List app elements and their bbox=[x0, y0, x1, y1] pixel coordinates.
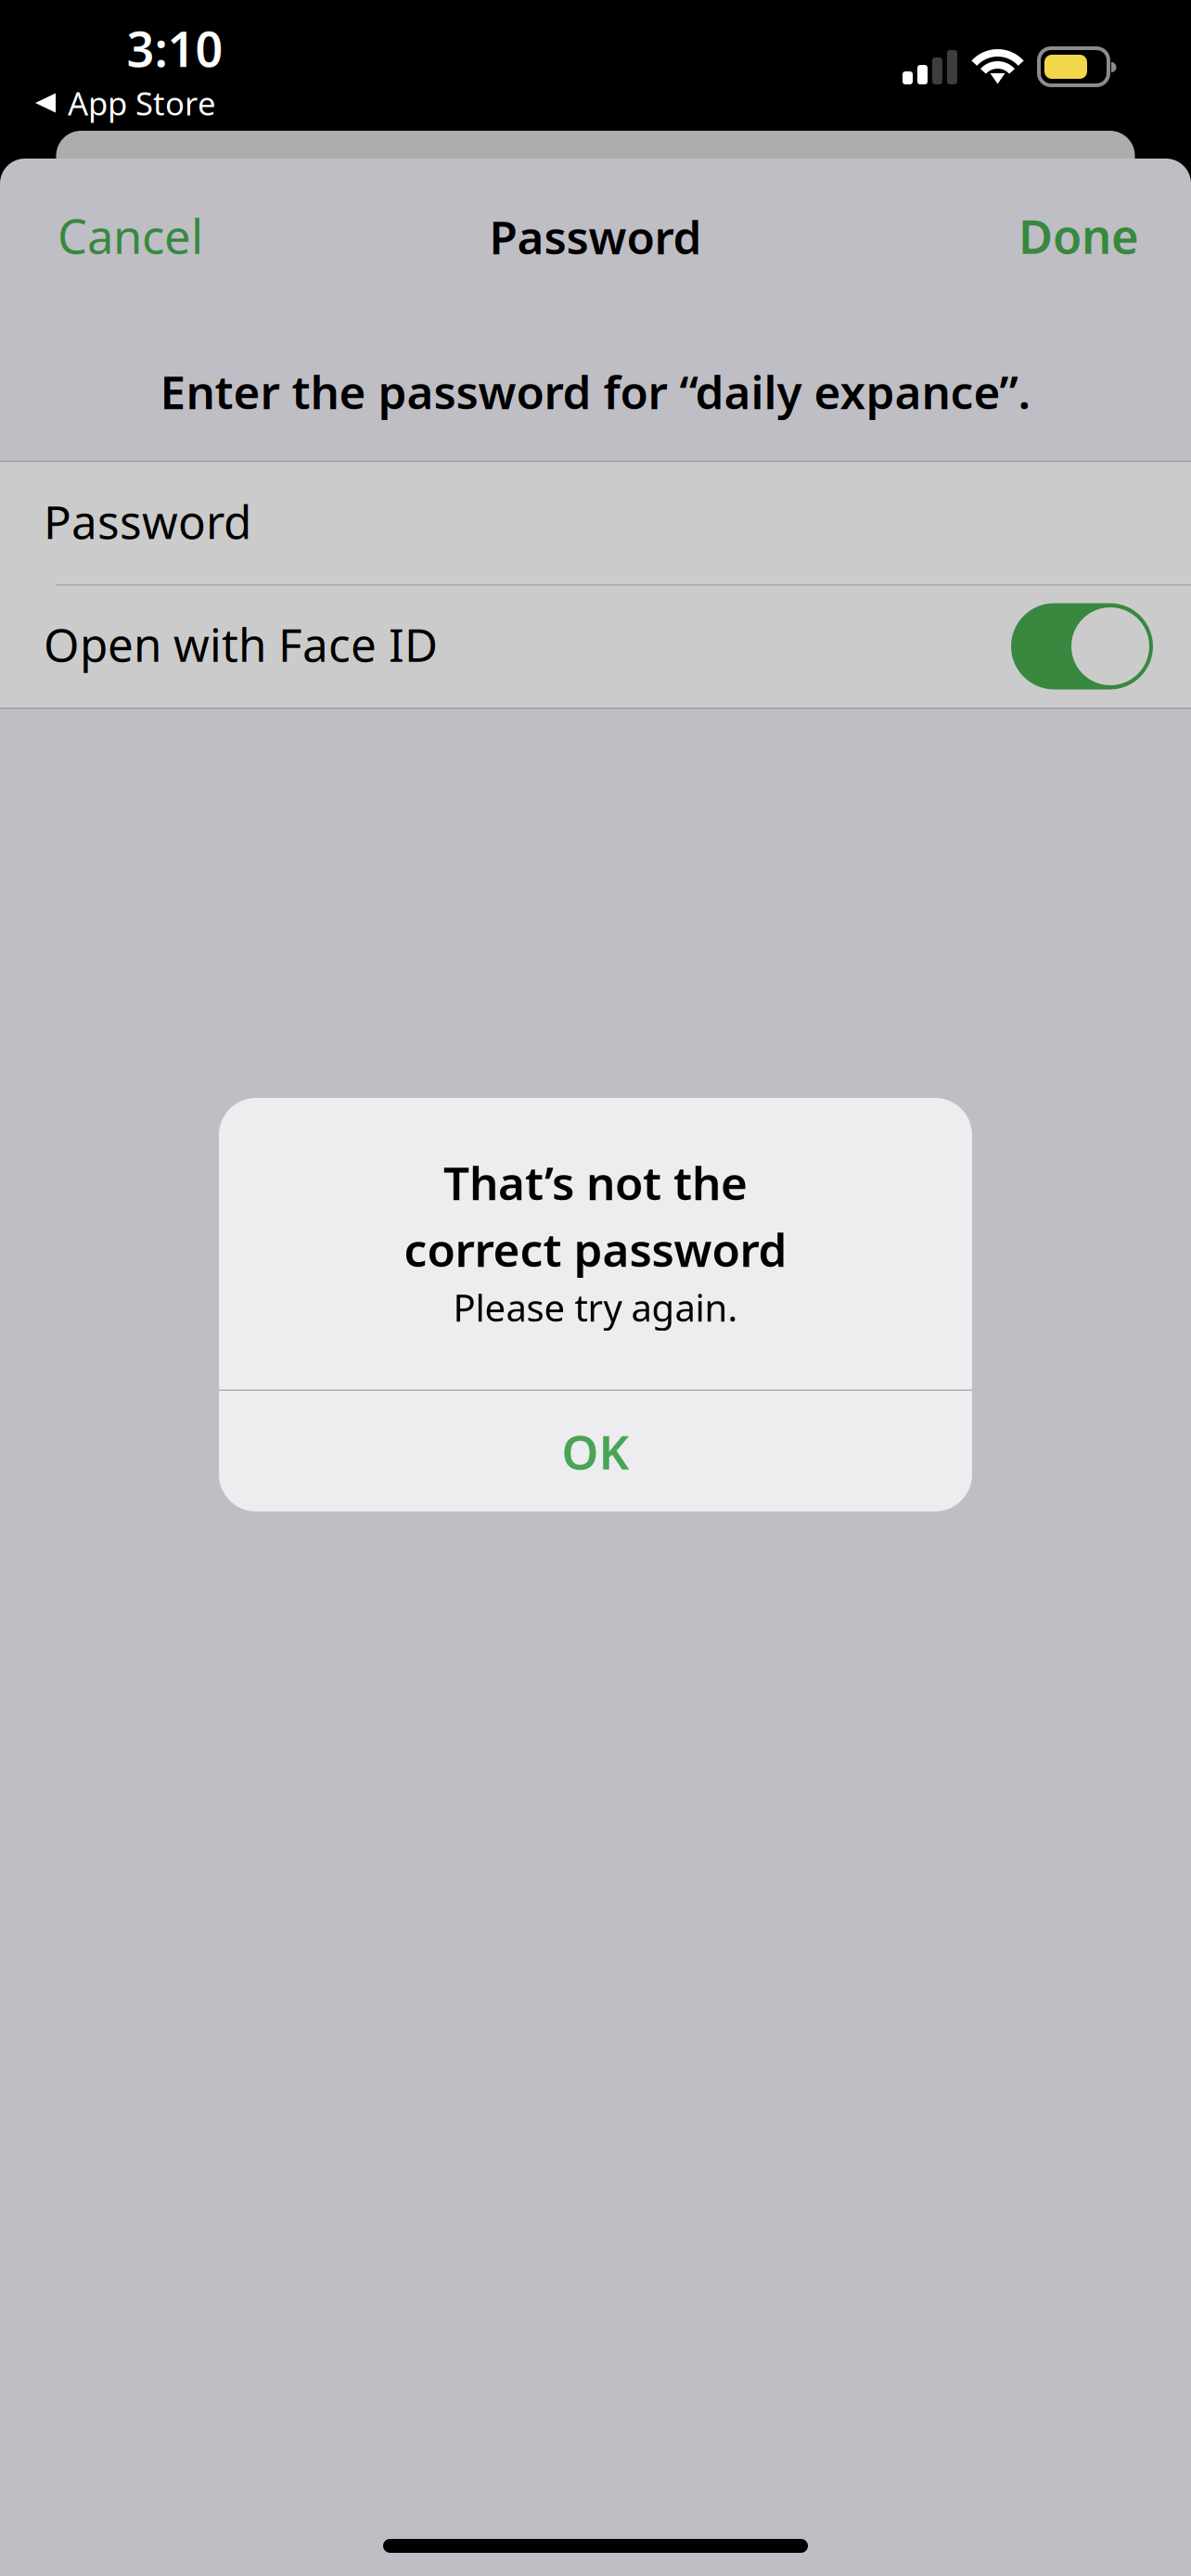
staticText: Open with Face ID bbox=[44, 613, 438, 675]
button[interactable]: Password bbox=[0, 460, 1191, 582]
staticText: OK bbox=[562, 1419, 629, 1483]
staticText: 3:10 bbox=[127, 15, 223, 81]
staticText: That’s not the bbox=[443, 1151, 748, 1214]
staticText: Please try again. bbox=[453, 1282, 738, 1332]
staticText: Password bbox=[44, 490, 251, 552]
staticText: Cancel bbox=[58, 204, 203, 268]
button[interactable]: On bbox=[0, 583, 1191, 705]
staticText: Done bbox=[1018, 204, 1139, 268]
button[interactable]: Done bbox=[972, 185, 1191, 287]
button[interactable]: Cancel bbox=[0, 185, 254, 287]
button[interactable]: OK bbox=[219, 1391, 972, 1511]
staticText: App Store bbox=[68, 81, 216, 125]
staticText: Password bbox=[489, 205, 702, 268]
staticText: Enter the password for “daily expance”. bbox=[160, 360, 1031, 423]
button[interactable]: Back to App Store bbox=[0, 77, 390, 129]
staticText: correct password bbox=[404, 1218, 787, 1280]
